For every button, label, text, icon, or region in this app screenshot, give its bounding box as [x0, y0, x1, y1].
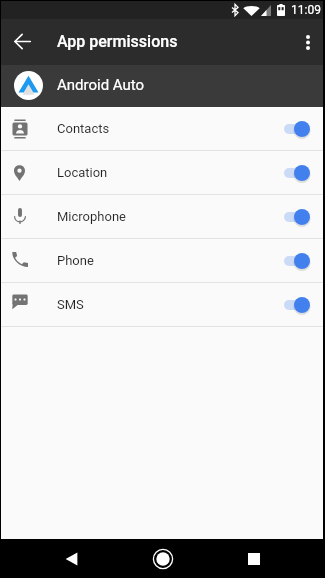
staticText: 11:09	[291, 3, 321, 17]
button[interactable]: Back	[47, 539, 95, 578]
button[interactable]: Navigate up	[0, 19, 44, 65]
button[interactable]: Phone	[0, 239, 325, 282]
button[interactable]: Contacts	[0, 107, 325, 150]
staticText: Android Auto	[57, 76, 145, 94]
button[interactable]: Android Auto	[0, 65, 325, 107]
staticText: Microphone	[57, 209, 126, 224]
staticText: App permissions	[57, 32, 178, 51]
button[interactable]: Microphone	[0, 195, 325, 238]
staticText: SMS	[57, 297, 84, 312]
button[interactable]: More options	[291, 19, 325, 65]
button[interactable]: Location	[0, 151, 325, 194]
button[interactable]: Recent apps	[230, 539, 278, 578]
staticText: Location	[57, 165, 108, 180]
staticText: Phone	[57, 253, 94, 268]
button[interactable]: SMS	[0, 283, 325, 326]
staticText: Contacts	[57, 121, 110, 136]
button[interactable]: Home	[139, 539, 187, 578]
